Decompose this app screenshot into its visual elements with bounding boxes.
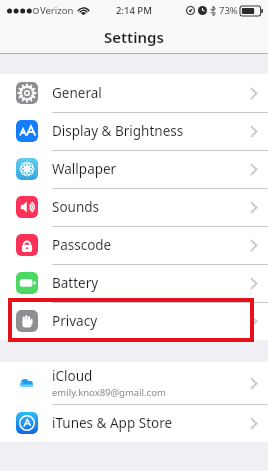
staticText: emily.knox89@gmail.com bbox=[52, 386, 166, 399]
button[interactable]: Battery bbox=[0, 264, 268, 302]
staticText: Wallpaper bbox=[52, 160, 117, 178]
staticText: Display & Brightness bbox=[52, 122, 184, 140]
staticText: iTunes & App Store bbox=[52, 414, 173, 432]
button[interactable]: Sounds bbox=[0, 188, 268, 226]
staticText: iCloud bbox=[52, 367, 93, 385]
staticText: 2:14 PM bbox=[116, 4, 152, 17]
staticText: Verizon bbox=[40, 4, 74, 17]
button[interactable]: General bbox=[0, 74, 268, 112]
staticText: Passcode bbox=[52, 236, 112, 254]
staticText: 73% bbox=[219, 4, 238, 17]
staticText: Settings bbox=[104, 27, 164, 47]
button[interactable]: iTunes & App Store bbox=[0, 404, 268, 442]
staticText: Battery bbox=[52, 274, 99, 292]
button[interactable]: Passcode bbox=[0, 226, 268, 264]
button[interactable]: iCloud bbox=[0, 362, 268, 404]
button[interactable]: Display & Brightness bbox=[0, 112, 268, 150]
button[interactable]: Wallpaper bbox=[0, 150, 268, 188]
staticText: General bbox=[52, 84, 102, 102]
button[interactable]: Privacy bbox=[0, 302, 268, 340]
staticText: Privacy bbox=[52, 312, 98, 330]
staticText: Sounds bbox=[52, 198, 100, 216]
